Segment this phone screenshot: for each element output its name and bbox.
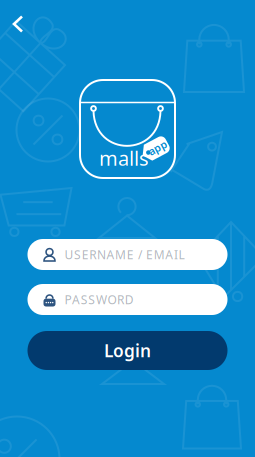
button[interactable]: Back bbox=[3, 5, 33, 42]
staticText: malls bbox=[99, 145, 149, 171]
staticText: app bbox=[148, 142, 168, 156]
staticText: USERNAME / EMAIL bbox=[64, 246, 184, 262]
staticText: Login bbox=[104, 339, 151, 362]
staticText: PASSWORD bbox=[64, 291, 134, 307]
button[interactable]: Login bbox=[27, 331, 227, 370]
